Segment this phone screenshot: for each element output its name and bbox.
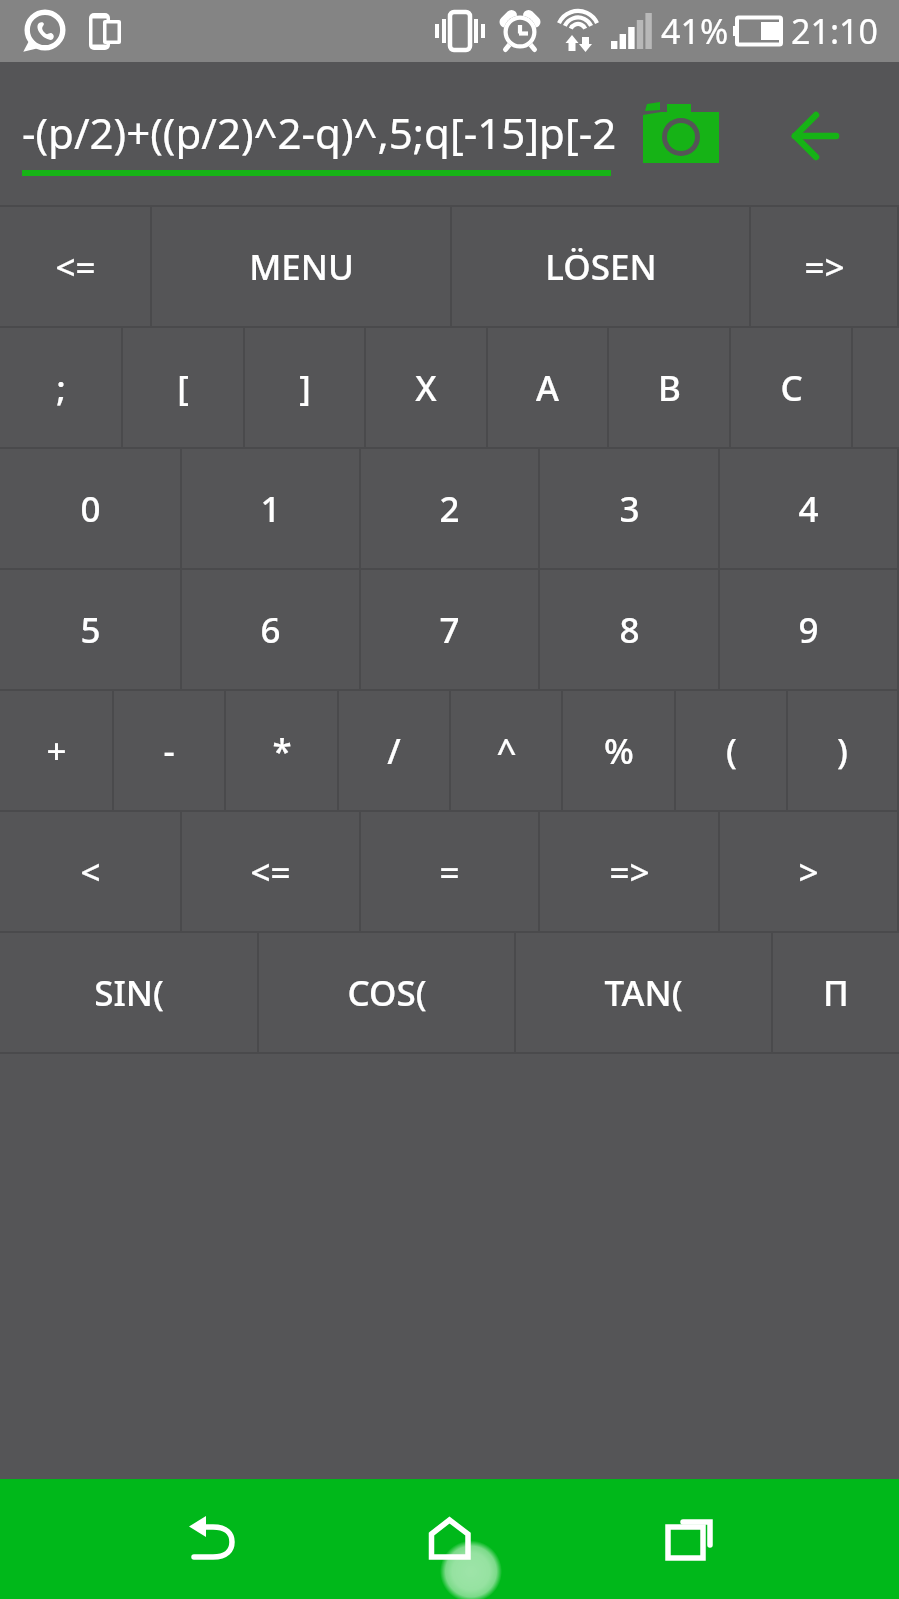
button[interactable]: => [751,207,897,326]
button[interactable]: B [609,328,729,447]
staticText: X [415,364,437,412]
staticText: <= [250,848,291,896]
staticText: 9 [798,606,819,654]
button[interactable]: X [366,328,486,447]
staticText: > [798,848,819,896]
staticText: 21:10 [791,8,878,54]
staticText: COS( [347,969,427,1017]
button[interactable]: < [0,812,180,931]
staticText: 41% [661,8,729,54]
button[interactable]: COS( [259,933,514,1052]
button[interactable]: <= [182,812,359,931]
button[interactable]: = [361,812,538,931]
button[interactable]: * [226,691,337,810]
button[interactable]: A [488,328,607,447]
staticText: % [604,727,634,775]
staticText: A [536,364,559,412]
staticText: TAN( [604,969,683,1017]
staticText: => [609,848,650,896]
staticText: 4 [798,485,819,533]
button[interactable]: 4 [720,449,897,568]
staticText: ( [726,727,737,775]
button[interactable]: Π [773,933,899,1052]
staticText: [ [177,364,189,412]
button[interactable]: ) [788,691,897,810]
staticText: <= [55,243,96,291]
button[interactable]: 2 [361,449,538,568]
button[interactable]: TAN( [516,933,771,1052]
staticText: 7 [439,606,460,654]
staticText: - [163,727,175,775]
button[interactable]: => [540,812,718,931]
staticText: -(p/2)+((p/2)^2-q)^,5;q[-15]p[-2 [22,104,617,161]
staticText: * [272,727,292,775]
button[interactable]: Recents [638,1492,738,1586]
button[interactable]: ^ [451,691,561,810]
button[interactable]: > [720,812,897,931]
staticText: 6 [260,606,281,654]
staticText: B [658,364,681,412]
button[interactable]: -(p/2)+((p/2)^2-q)^,5;q[-15]p[-2 [22,90,626,175]
button[interactable]: + [0,691,112,810]
staticText: / [387,727,401,775]
button[interactable]: 8 [540,570,718,689]
staticText: 1 [260,485,281,533]
button[interactable]: ( [676,691,786,810]
button[interactable]: 5 [0,570,180,689]
staticText: 8 [619,606,640,654]
staticText: = [439,848,460,896]
button[interactable]: Home [400,1492,500,1586]
button[interactable]: / [339,691,449,810]
button[interactable]: 9 [720,570,897,689]
staticText: ^ [496,727,517,775]
button[interactable]: LÖSEN [452,207,749,326]
staticText: MENU [249,243,354,291]
staticText: < [80,848,101,896]
staticText: C [780,364,803,412]
button[interactable]: 7 [361,570,538,689]
button[interactable]: 6 [182,570,359,689]
staticText: ; [56,364,66,412]
button[interactable]: 3 [540,449,718,568]
button[interactable]: ] [245,328,364,447]
button[interactable]: MENU [152,207,450,326]
button[interactable]: % [563,691,674,810]
button[interactable]: ; [0,328,121,447]
button[interactable]: 0 [0,449,180,568]
button[interactable]: Back [779,80,849,160]
staticText: LÖSEN [545,243,657,291]
button[interactable]: - [114,691,224,810]
button[interactable]: Back [161,1492,261,1586]
staticText: ] [299,364,311,412]
button[interactable]: C [731,328,851,447]
button[interactable]: 1 [182,449,359,568]
staticText: ) [837,727,848,775]
staticText: => [804,243,845,291]
staticText: Π [823,969,849,1017]
button[interactable]: <= [0,207,150,326]
staticText: 3 [619,485,640,533]
staticText: + [46,727,67,775]
button[interactable]: [ [123,328,243,447]
staticText: SIN( [94,969,164,1017]
staticText: 5 [80,606,101,654]
button[interactable]: SIN( [0,933,257,1052]
staticText: 0 [80,485,101,533]
button[interactable]: Camera [630,62,730,177]
staticText: 2 [439,485,460,533]
